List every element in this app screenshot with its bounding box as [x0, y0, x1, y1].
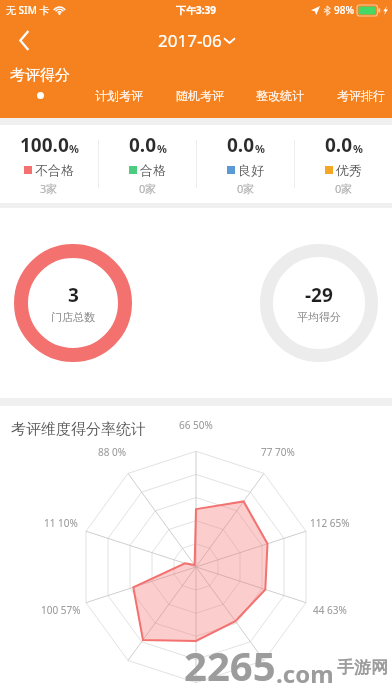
- staticText: 平均得分: [297, 310, 341, 324]
- staticText: 0家: [139, 181, 157, 196]
- staticText: -29: [305, 282, 333, 308]
- staticText: 2265: [184, 638, 276, 692]
- staticText: 0.0: [325, 132, 353, 158]
- staticText: 77 70%: [261, 445, 295, 459]
- staticText: 112 65%: [310, 516, 350, 530]
- staticText: 计划考评: [95, 88, 143, 103]
- staticText: 良好: [238, 162, 264, 178]
- button[interactable]: 0.0: [197, 125, 294, 203]
- staticText: 0家: [237, 181, 255, 196]
- staticText: 无 SIM 卡: [6, 3, 50, 17]
- staticText: .com: [276, 657, 334, 690]
- staticText: 3: [68, 282, 79, 308]
- button[interactable]: 考评得分: [10, 66, 70, 99]
- staticText: 合格: [140, 162, 166, 178]
- button[interactable]: -29: [260, 244, 378, 362]
- staticText: 考评维度得分率统计: [11, 420, 146, 439]
- staticText: 0.0: [129, 132, 157, 158]
- button[interactable]: Back: [6, 22, 42, 58]
- staticText: 98%: [334, 3, 354, 17]
- staticText: 考评得分: [10, 66, 70, 85]
- staticText: 门店总数: [51, 310, 95, 324]
- staticText: 100 57%: [41, 603, 81, 617]
- staticText: 整改统计: [256, 88, 304, 103]
- staticText: 优秀: [336, 162, 362, 178]
- staticText: 66 50%: [179, 418, 213, 432]
- staticText: 44 63%: [313, 603, 347, 617]
- staticText: 3家: [40, 181, 58, 196]
- staticText: %: [69, 141, 79, 156]
- button[interactable]: 随机考评: [173, 84, 227, 107]
- button[interactable]: 计划考评: [92, 84, 146, 107]
- staticText: 100.0: [20, 132, 69, 158]
- button[interactable]: 考评排行: [334, 84, 388, 107]
- button[interactable]: 0.0: [295, 125, 392, 203]
- staticText: 考评排行: [337, 88, 385, 103]
- staticText: 11 10%: [44, 516, 78, 530]
- staticText: %: [157, 141, 167, 156]
- button[interactable]: 2017-06: [152, 25, 241, 56]
- button[interactable]: 整改统计: [253, 84, 307, 107]
- staticText: 随机考评: [176, 88, 224, 103]
- button[interactable]: 100.0: [0, 125, 98, 203]
- staticText: 88 0%: [98, 445, 127, 459]
- staticText: 0.0: [227, 132, 255, 158]
- button[interactable]: 3: [14, 244, 132, 362]
- staticText: 下午3:39: [176, 3, 216, 17]
- staticText: 2017-06: [158, 29, 222, 52]
- staticText: %: [255, 141, 265, 156]
- button[interactable]: 0.0: [99, 125, 196, 203]
- staticText: 手游网: [337, 657, 388, 678]
- staticText: 不合格: [35, 162, 74, 178]
- staticText: 0家: [335, 181, 353, 196]
- staticText: %: [353, 141, 363, 156]
